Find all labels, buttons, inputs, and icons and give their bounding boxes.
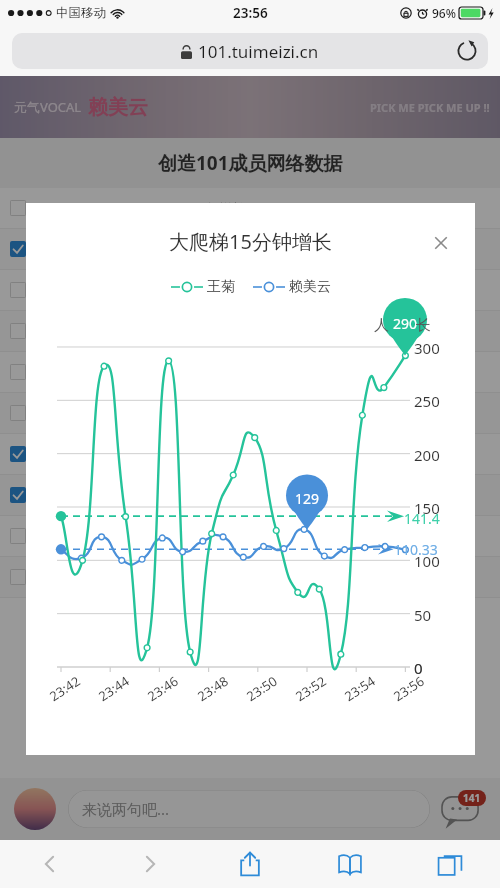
button[interactable]: Close [429, 231, 453, 255]
button[interactable]: 来说两句吧... [68, 790, 430, 828]
button[interactable]: 赖美云 [253, 278, 331, 296]
button[interactable]: 气增长 [10, 516, 490, 556]
staticText: 创造101成员网络数据 [158, 150, 343, 176]
staticText: 中国移动 [56, 5, 106, 21]
staticText: 23:54 [341, 671, 379, 705]
staticText: 23:50 [243, 671, 281, 705]
staticText: 101.tuimeizi.cn [198, 40, 319, 63]
button[interactable]: Share [200, 840, 300, 888]
staticText: 气增长 [206, 200, 245, 216]
button[interactable]: Comments [442, 790, 486, 828]
staticText: 141 [463, 791, 481, 805]
staticText: 23:46 [144, 671, 182, 705]
staticText: 200 [414, 445, 440, 465]
staticText: 50 [414, 605, 432, 625]
staticText: 290 [393, 314, 418, 333]
staticText: 气增长 [206, 241, 245, 257]
button[interactable]: 气增长 [10, 270, 490, 310]
staticText: 0 [414, 658, 423, 678]
staticText: 23:44 [95, 671, 133, 705]
staticText: 23:52 [292, 671, 330, 705]
button[interactable]: Avatar [14, 788, 56, 830]
staticText: 129 [295, 489, 320, 508]
staticText: 23:42 [46, 671, 84, 705]
staticText: 气增长 [206, 487, 245, 503]
staticText: 赖美云 [289, 278, 331, 296]
button[interactable]: Reload [456, 40, 478, 62]
button[interactable]: 气增长 [10, 311, 490, 351]
button[interactable]: Forward [100, 840, 200, 888]
button[interactable]: 气增长 [10, 352, 490, 392]
staticText: 气增长 [206, 282, 245, 298]
button[interactable]: 气增长 [10, 188, 490, 228]
button[interactable]: 气增长 [10, 557, 490, 597]
staticText: 气增长 [206, 569, 245, 585]
staticText: 赖美云 [88, 95, 148, 120]
staticText: PICK ME PICK ME UP !! [370, 100, 490, 115]
button[interactable]: 气增长 [10, 229, 490, 269]
staticText: 0 [414, 658, 423, 678]
button[interactable]: Tabs [400, 840, 500, 888]
button[interactable]: 气增长 [10, 434, 490, 474]
staticText: 王菊 [207, 278, 235, 296]
staticText: 141.4 [404, 509, 440, 528]
staticText: 110.33 [394, 540, 438, 559]
staticText: 元气VOCAL [14, 98, 82, 116]
staticText: 23:48 [194, 671, 232, 705]
staticText: 300 [414, 338, 440, 358]
button[interactable]: 101.tuimeizi.cn [12, 33, 488, 69]
staticText: 长 [416, 316, 431, 335]
staticText: 大爬梯15分钟增长 [169, 228, 332, 255]
staticText: 气增长 [206, 528, 245, 544]
staticText: 23:56 [233, 4, 268, 22]
staticText: 气增长 [206, 446, 245, 462]
staticText: 人 [374, 316, 389, 335]
button[interactable]: 气增长 [10, 393, 490, 433]
staticText: 23:56 [390, 671, 428, 705]
staticText: 250 [414, 391, 440, 411]
button[interactable]: 气增长 [10, 475, 490, 515]
staticText: 来说两句吧... [82, 799, 170, 819]
staticText: 100 [414, 551, 440, 571]
button[interactable]: Bookmarks [300, 840, 400, 888]
button[interactable]: Back [0, 840, 100, 888]
staticText: 96% [432, 5, 456, 21]
staticText: 150 [414, 498, 440, 518]
button[interactable]: 王菊 [171, 278, 235, 296]
